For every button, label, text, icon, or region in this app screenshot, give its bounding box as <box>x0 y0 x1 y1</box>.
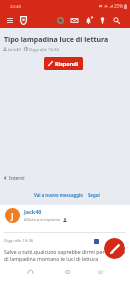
button[interactable]: Vai a nuovo messaggio <box>33 190 84 200</box>
button[interactable]: Segui <box>87 190 101 200</box>
button[interactable]: J <box>0 208 130 223</box>
staticText: Jack40 <box>8 46 21 52</box>
staticText: 22:40 <box>10 3 21 9</box>
button[interactable]: Interni <box>3 173 25 183</box>
button[interactable]: Badges <box>95 13 109 27</box>
staticText: Tipo lampadina luce di lettura <box>4 35 109 45</box>
staticText: Rispondi <box>55 60 79 67</box>
staticText: Allista principiante <box>24 217 61 223</box>
button[interactable]: Home <box>16 13 30 27</box>
button[interactable]: Indietro <box>94 266 106 278</box>
button[interactable]: Home <box>61 266 73 278</box>
button[interactable]: Rispondi <box>44 57 83 70</box>
staticText: Salve a tutti,qualcuno saprebbe dirmi pe… <box>4 248 128 262</box>
button[interactable]: Recenti <box>24 266 36 278</box>
staticText: Segui <box>88 192 100 198</box>
staticText: Interni <box>9 175 25 182</box>
button[interactable]: Notifications <box>81 13 95 27</box>
button[interactable]: Menu <box>3 13 17 27</box>
staticText: Oggi alle 16:36 <box>4 238 34 244</box>
staticText: Jack40 <box>24 208 42 215</box>
button[interactable]: Condividi su Facebook <box>94 239 99 244</box>
staticText: J <box>11 210 14 222</box>
staticText: Oggi alle 16:36 <box>29 46 60 52</box>
button[interactable]: Scrivi nuovo messaggio <box>104 238 125 259</box>
button[interactable]: Messages <box>67 13 81 27</box>
button[interactable]: Search <box>109 13 123 27</box>
button[interactable]: Account <box>53 13 67 27</box>
staticText: 25% <box>114 3 123 9</box>
staticText: Vai a nuovo messaggio <box>34 192 83 198</box>
